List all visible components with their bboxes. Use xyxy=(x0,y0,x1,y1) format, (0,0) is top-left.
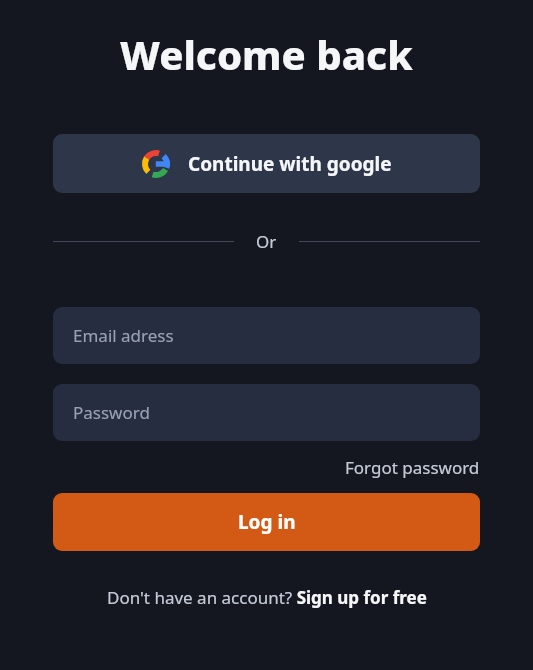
staticText: Don't have an account? Sign up for free xyxy=(107,586,427,609)
staticText: Forgot password xyxy=(345,456,480,479)
staticText: Welcome back xyxy=(120,27,413,81)
button[interactable]: Password xyxy=(53,384,480,441)
staticText: Password xyxy=(73,401,150,424)
staticText: Or xyxy=(256,230,277,253)
button[interactable]: Forgot password xyxy=(345,456,480,479)
other: Google logo xyxy=(142,150,170,178)
button[interactable]: Email adress xyxy=(53,307,480,364)
button[interactable]: Don't have an account? Sign up for free xyxy=(107,586,427,609)
staticText: Continue with google xyxy=(188,151,392,177)
button[interactable]: Google logo xyxy=(53,134,480,193)
button[interactable]: Log in xyxy=(53,493,480,551)
staticText: Email adress xyxy=(73,324,174,347)
staticText: Log in xyxy=(238,509,296,535)
